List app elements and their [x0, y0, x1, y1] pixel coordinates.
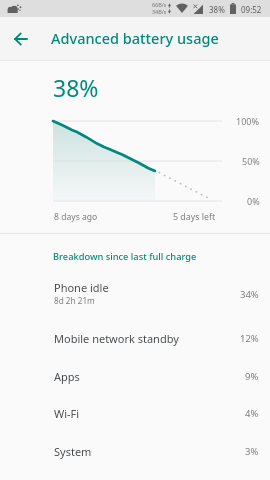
staticText: 66B/s	[152, 1, 167, 8]
staticText: 12%	[240, 332, 259, 345]
staticText: Mobile network standby	[54, 331, 179, 346]
staticText: 100%	[236, 115, 259, 127]
staticText: System	[54, 444, 92, 459]
staticText: 38%	[53, 72, 99, 103]
staticText: 8 days ago	[54, 211, 98, 223]
staticText: 5 days left	[173, 211, 216, 223]
button[interactable]: Apps	[0, 358, 270, 396]
staticText: 50%	[242, 155, 260, 167]
button[interactable]: Mobile network standby	[0, 320, 270, 358]
button[interactable]: Back	[8, 26, 34, 52]
staticText: 9%	[245, 370, 259, 383]
staticText: Apps	[54, 369, 80, 384]
staticText: 09:52	[241, 4, 262, 15]
staticText: 38%	[209, 4, 225, 15]
staticText: Breakdown since last full charge	[53, 250, 197, 263]
staticText: Wi-Fi	[54, 406, 80, 421]
staticText: Advanced battery usage	[51, 28, 219, 48]
button[interactable]: Wi-Fi	[0, 395, 270, 433]
button[interactable]: Phone idle	[0, 272, 270, 320]
staticText: 34%	[240, 288, 259, 301]
staticText: 0%	[247, 195, 260, 207]
button[interactable]: System	[0, 433, 270, 471]
staticText: Phone idle	[54, 280, 109, 295]
staticText: 8d 2h 21m	[54, 295, 95, 306]
staticText: 4%	[245, 407, 259, 420]
staticText: 34B/s	[152, 8, 167, 15]
staticText: 3%	[245, 445, 259, 458]
